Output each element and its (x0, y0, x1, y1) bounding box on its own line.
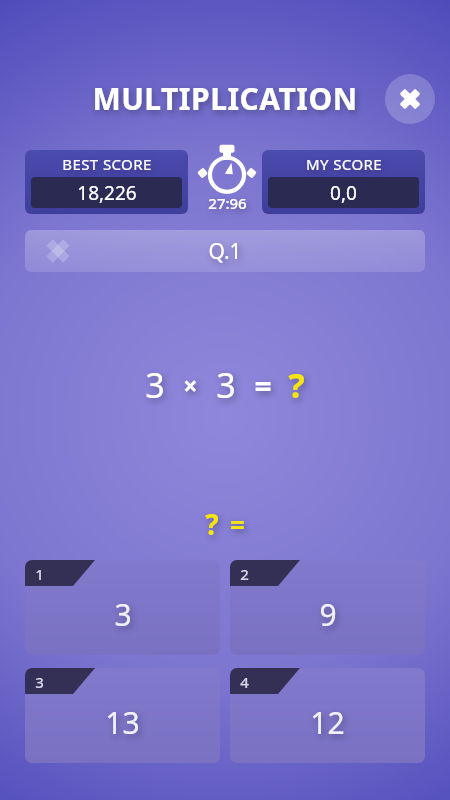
staticText: 1 (35, 564, 44, 584)
staticText: = (254, 365, 272, 406)
staticText: 3 (216, 362, 236, 408)
staticText: × (183, 368, 198, 402)
staticText: 9 (319, 594, 337, 635)
staticText: 2 (240, 564, 249, 584)
staticText: 18,226 (77, 180, 137, 206)
button[interactable]: 1 (25, 560, 220, 655)
staticText: MULTIPLICATION (92, 78, 358, 119)
staticText: 4 (240, 672, 249, 692)
staticText: 3 (114, 594, 132, 635)
staticText: 13 (105, 702, 140, 743)
button[interactable]: BEST SCORE (25, 150, 188, 214)
button[interactable]: 2 (230, 560, 425, 655)
button[interactable]: MY SCORE (262, 150, 425, 214)
staticText: 12 (310, 702, 345, 743)
staticText: 3 (35, 672, 44, 692)
staticText: 0,0 (330, 180, 357, 206)
staticText: BEST SCORE (62, 154, 152, 174)
staticText: = (230, 507, 245, 542)
staticText: 3 (145, 362, 165, 408)
staticText: MY SCORE (306, 154, 382, 174)
button[interactable]: Close (385, 74, 435, 124)
staticText: ? (205, 505, 219, 543)
staticText: ? (288, 362, 305, 408)
staticText: 27:96 (208, 193, 247, 213)
staticText: Q.1 (208, 237, 242, 266)
button[interactable]: 3 (25, 668, 220, 763)
button[interactable]: 4 (230, 668, 425, 763)
button[interactable]: Q.1 (25, 230, 425, 272)
